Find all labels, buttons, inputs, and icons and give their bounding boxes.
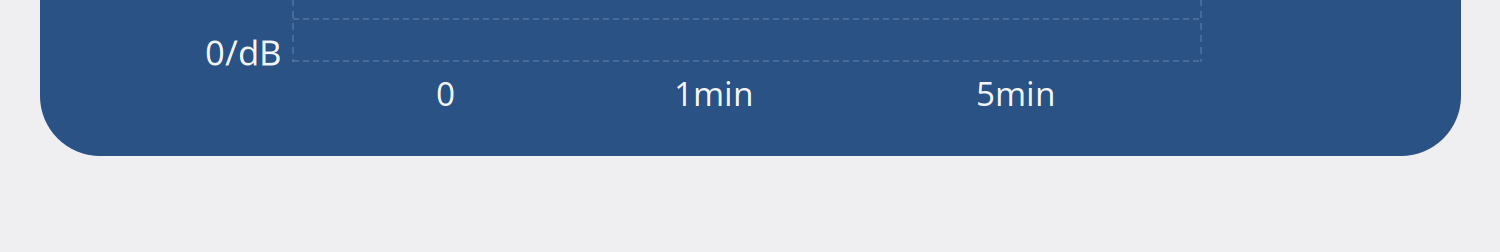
button[interactable]: Sound level chart, 0 dB xyxy=(0,0,1500,252)
staticText: 0/dB xyxy=(205,29,282,75)
staticText: 5min xyxy=(976,71,1056,115)
staticText: 1min xyxy=(674,71,754,115)
staticText: 0 xyxy=(436,71,455,115)
